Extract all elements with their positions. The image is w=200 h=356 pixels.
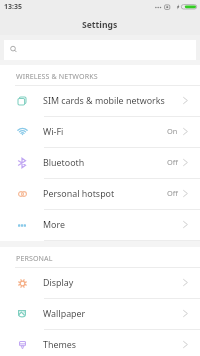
staticText: WIRELESS & NETWORKS xyxy=(16,71,98,81)
button[interactable]: Themes xyxy=(0,330,200,356)
staticText: SIM cards & mobile networks xyxy=(43,94,165,106)
staticText: PERSONAL xyxy=(16,253,53,263)
button[interactable]: Personal hotspot xyxy=(0,179,200,210)
staticText: Display xyxy=(43,276,74,288)
button[interactable]: Wi-Fi xyxy=(0,117,200,148)
staticText: 13:35 xyxy=(4,2,22,12)
staticText: Off xyxy=(167,157,178,167)
button[interactable]: Wallpaper xyxy=(0,299,200,330)
button[interactable]: SIM cards & mobile networks xyxy=(0,86,200,117)
button[interactable]: Display xyxy=(0,268,200,299)
staticText: Off xyxy=(167,188,178,198)
staticText: Personal hotspot xyxy=(43,187,115,199)
staticText: Wallpaper xyxy=(43,307,86,319)
staticText: Settings xyxy=(82,19,118,31)
staticText: Wi-Fi xyxy=(43,125,64,137)
button[interactable]: Bluetooth xyxy=(0,148,200,179)
button[interactable]: Search settings xyxy=(4,40,196,60)
staticText: On xyxy=(167,126,178,136)
staticText: Bluetooth xyxy=(43,156,85,168)
button[interactable]: More xyxy=(0,210,200,241)
staticText: More xyxy=(43,218,65,230)
staticText: Themes xyxy=(43,338,77,350)
